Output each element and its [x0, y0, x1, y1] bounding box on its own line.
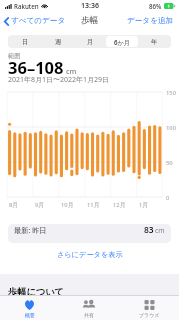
button[interactable]: 最新: 昨日: [8, 224, 171, 243]
staticText: 13:36: [81, 1, 99, 11]
staticText: 50: [166, 159, 173, 167]
staticText: cm: [155, 226, 165, 235]
button[interactable]: 6か月: [106, 36, 138, 47]
staticText: 2021年8月1日〜2022年1月29日: [8, 75, 110, 85]
staticText: さらにデータを表示: [57, 250, 123, 259]
staticText: 概要: [25, 312, 35, 318]
staticText: 週: [55, 38, 62, 46]
staticText: cm: [66, 66, 77, 76]
button[interactable]: さらにデータを表示: [0, 245, 179, 264]
staticText: 86%: [149, 2, 162, 10]
staticText: Rakuten: [14, 2, 39, 10]
staticText: 年: [151, 38, 158, 46]
staticText: 6か月: [114, 38, 131, 46]
staticText: 日: [22, 38, 29, 46]
staticText: 83: [144, 224, 154, 236]
button[interactable]: 週: [42, 36, 74, 47]
staticText: 範囲: [8, 52, 21, 60]
staticText: 歩幅: [81, 15, 99, 26]
button[interactable]: 年: [138, 36, 170, 47]
button[interactable]: ブラウズ: [119, 296, 179, 320]
button[interactable]: すべてのデータ: [4, 16, 68, 26]
staticText: 月: [87, 38, 94, 46]
staticText: 10月: [61, 201, 74, 209]
staticText: 36–108: [8, 56, 64, 78]
staticText: すべてのデータ: [11, 16, 66, 26]
button[interactable]: 日: [9, 36, 42, 47]
button[interactable]: 概要: [0, 296, 59, 320]
staticText: ブラウズ: [139, 312, 160, 318]
staticText: 12月: [113, 201, 126, 209]
button[interactable]: データを追加: [127, 16, 179, 26]
button[interactable]: 共有: [59, 296, 119, 320]
staticText: 9月: [35, 201, 45, 209]
staticText: 歩幅について: [8, 286, 64, 298]
button[interactable]: 月: [74, 36, 106, 47]
staticText: 1月: [139, 201, 149, 209]
staticText: 150: [166, 89, 176, 97]
staticText: 8月: [9, 201, 19, 209]
staticText: 11月: [87, 201, 100, 209]
staticText: 共有: [84, 312, 94, 318]
staticText: 0: [166, 194, 170, 202]
staticText: データを追加: [127, 16, 174, 26]
staticText: 100: [166, 124, 176, 132]
staticText: 最新: 昨日: [14, 225, 47, 235]
